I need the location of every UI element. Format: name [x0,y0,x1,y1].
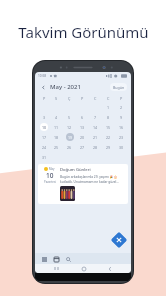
staticText: 2 [120,105,123,110]
staticText: 20 [80,135,85,140]
button[interactable]: 2 [115,102,128,112]
staticText: Bugün arkadaşlarımla 29. yaşımı 🎉🎂 kutla… [60,175,119,184]
button[interactable]: 27 [76,142,89,152]
staticText: Ç [68,96,71,101]
staticText: 1 [107,105,110,110]
staticText: 17 [42,135,47,140]
button[interactable]: Ara [64,255,72,263]
button[interactable]: 15 [102,122,115,132]
staticText: 31 [42,155,47,160]
button[interactable]: Ana ekran [79,264,88,273]
staticText: 25 [54,145,59,150]
staticText: 21 [93,135,98,140]
staticText: 12 [67,125,72,130]
button[interactable]: 6 [76,112,89,122]
staticText: 19 [68,135,73,140]
staticText: C [107,96,110,101]
button[interactable]: Son uygulamalar [52,264,61,273]
staticText: 11 [54,125,59,130]
button[interactable]: 19 [63,132,76,142]
button[interactable]: 13 [76,122,89,132]
button[interactable]: 29 [102,142,115,152]
staticText: 13 [80,125,85,130]
staticText: Bugün [113,85,125,90]
staticText: P [43,96,46,101]
button[interactable]: 20 [76,132,89,142]
staticText: 22 [106,135,111,140]
button[interactable]: 3 [38,112,50,122]
button[interactable]: 18 [50,132,63,142]
staticText: 15 [106,125,111,130]
button[interactable]: 14 [89,122,102,132]
staticText: 18 [54,135,59,140]
staticText: 3 [43,115,46,120]
staticText: 10 [46,171,54,180]
button[interactable]: 22 [102,132,115,142]
button[interactable]: 5 [63,112,76,122]
button[interactable]: Geri [105,264,114,273]
staticText: 28 [93,145,98,150]
staticText: 23 [119,135,124,140]
staticText: 26 [67,145,72,150]
button[interactable]: 17 [38,132,50,142]
staticText: May - 2021 [50,83,81,91]
staticText: 6 [81,115,84,120]
button[interactable]: 21 [89,132,102,142]
staticText: 29 [106,145,111,150]
button[interactable]: 10 [38,122,50,132]
button[interactable]: 9 [115,112,128,122]
staticText: Takvim Görünümü [18,22,149,42]
staticText: 14 [93,125,98,130]
staticText: P [81,96,84,101]
button[interactable]: Menü [40,255,48,263]
staticText: Pazartesi [44,180,56,184]
button[interactable]: 25 [50,142,63,152]
staticText: May [49,167,55,171]
staticText: 10:58 [38,74,47,78]
button[interactable]: 4 [50,112,63,122]
button[interactable]: Yeni etkinlik ekle [110,231,127,248]
button[interactable]: 16 [115,122,128,132]
button[interactable]: Takvim [52,255,60,263]
staticText: 8 [107,115,110,120]
button[interactable]: 24 [38,142,50,152]
staticText: Doğum Günleri [60,167,91,173]
button[interactable]: 28 [89,142,102,152]
button[interactable]: 7 [89,112,102,122]
staticText: 10 [42,125,47,130]
button[interactable]: 8 [102,112,115,122]
staticText: S [55,96,58,101]
button[interactable]: 12 [63,122,76,132]
staticText: 24 [42,145,47,150]
button[interactable]: 11 [50,122,63,132]
button[interactable]: May - 2021 [50,83,81,91]
staticText: 16 [119,125,124,130]
staticText: 7 [94,115,97,120]
staticText: C [94,96,97,101]
button[interactable]: 30 [115,142,128,152]
button[interactable]: Bugün [110,83,127,91]
staticText: 4 [55,115,58,120]
staticText: 5 [68,115,71,120]
button[interactable]: May [38,164,128,204]
button[interactable]: 23 [115,132,128,142]
staticText: 27 [80,145,85,150]
staticText: P [120,96,123,101]
button[interactable]: 26 [63,142,76,152]
button[interactable]: Önceki ay [39,83,47,91]
staticText: 30 [119,145,124,150]
button[interactable]: 31 [38,152,50,162]
button[interactable]: 1 [102,102,115,112]
staticText: 9 [120,115,123,120]
